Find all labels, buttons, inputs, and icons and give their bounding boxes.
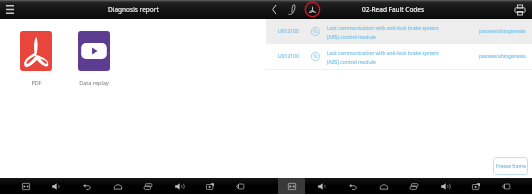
button[interactable]: Resize screen — [12, 178, 39, 194]
button[interactable]: Screenshot — [462, 178, 489, 194]
button[interactable]: Home — [370, 178, 397, 194]
staticText: Data replay — [79, 79, 109, 86]
button[interactable]: Screenshot — [196, 178, 223, 194]
staticText: 02-Read Fault Codes — [362, 5, 425, 14]
button[interactable]: Volume up — [165, 178, 192, 194]
staticText: (ABS) control module — [327, 59, 376, 66]
button[interactable]: Home — [104, 178, 131, 194]
other: Search code — [311, 27, 320, 36]
button[interactable]: Back — [267, 0, 280, 19]
staticText: (ABS) control module — [327, 34, 376, 41]
button[interactable]: Recent apps — [400, 178, 427, 194]
button[interactable]: Freeze frame — [493, 157, 528, 175]
staticText: Diagnosis report — [108, 5, 159, 14]
button[interactable]: PDF — [20, 31, 52, 86]
button[interactable]: Menu — [0, 0, 20, 19]
button[interactable]: Back — [339, 178, 366, 194]
button[interactable]: U012100 — [266, 19, 532, 44]
button[interactable]: Print — [513, 3, 527, 17]
staticText: U012100 — [278, 28, 299, 35]
button[interactable]: Export PDF — [303, 0, 322, 19]
button[interactable]: Resize screen — [278, 178, 305, 194]
button[interactable]: Recent apps — [134, 178, 161, 194]
button[interactable]: Back — [73, 178, 100, 194]
staticText: Lost communication with anti-lock brake … — [327, 50, 439, 57]
other: Search code — [311, 52, 320, 61]
button[interactable]: Volume down — [42, 178, 69, 194]
button[interactable]: Volume down — [308, 178, 335, 194]
button[interactable]: U012100 — [266, 44, 532, 69]
button[interactable]: Data replay — [78, 31, 110, 86]
staticText: passive/abiogenesis — [479, 53, 526, 60]
button[interactable]: Volume up — [431, 178, 458, 194]
staticText: Freeze frame — [496, 163, 526, 170]
staticText: passive/abiogenesis — [479, 28, 526, 35]
button[interactable]: Signature — [285, 0, 299, 19]
button[interactable]: Split screen — [492, 178, 519, 194]
staticText: U012100 — [278, 53, 299, 60]
staticText: PDF — [31, 79, 42, 86]
button[interactable]: Split screen — [226, 178, 253, 194]
staticText: Lost communication with anti-lock brake … — [327, 25, 439, 32]
